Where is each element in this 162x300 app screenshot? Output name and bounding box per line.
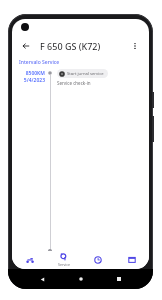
button[interactable]: Recent apps	[115, 275, 123, 283]
staticText: Service check-in	[57, 80, 91, 86]
staticText: 5/4/2023	[23, 77, 45, 84]
button[interactable]: More options	[127, 38, 143, 54]
button[interactable]: Start jurnal service	[57, 69, 108, 78]
button[interactable]: Motorcycle	[12, 251, 47, 269]
button[interactable]: Notes	[115, 251, 149, 269]
button[interactable]: Service	[47, 251, 81, 269]
button[interactable]: Back	[18, 38, 34, 54]
staticText: Service	[58, 262, 70, 267]
staticText: Start jurnal service	[67, 71, 104, 77]
staticText: Intervalo Service	[19, 59, 60, 66]
button[interactable]: Home	[77, 275, 85, 283]
button[interactable]: History	[81, 251, 115, 269]
staticText: F 650 GS (K72)	[40, 40, 101, 52]
button[interactable]: Back	[38, 275, 46, 283]
button[interactable]: 8500KM	[12, 69, 149, 251]
staticText: 8500KM	[25, 70, 45, 77]
